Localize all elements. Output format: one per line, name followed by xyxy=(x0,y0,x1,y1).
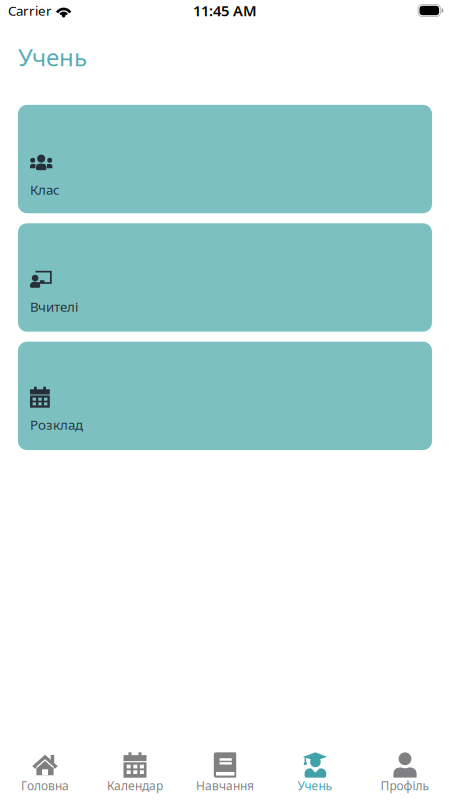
staticText: Календар xyxy=(107,777,163,793)
button[interactable]: Профіль xyxy=(360,743,450,799)
button[interactable]: Вчителі xyxy=(18,223,432,332)
staticText: Профіль xyxy=(380,777,429,793)
staticText: 11:45 AM xyxy=(193,1,257,20)
button[interactable]: Клас xyxy=(18,105,432,213)
staticText: Учень xyxy=(297,777,332,793)
staticText: Головна xyxy=(21,777,69,793)
button[interactable]: Учень xyxy=(270,743,360,799)
staticText: Вчителі xyxy=(30,298,78,315)
staticText: Навчання xyxy=(196,777,254,793)
button[interactable]: Головна xyxy=(0,743,90,799)
button[interactable]: Календар xyxy=(90,743,180,799)
staticText: Carrier xyxy=(8,2,52,19)
button[interactable]: Розклад xyxy=(18,342,432,450)
button[interactable]: Навчання xyxy=(180,743,270,799)
staticText: Учень xyxy=(18,41,87,73)
staticText: Клас xyxy=(30,181,60,198)
staticText: Розклад xyxy=(30,416,83,433)
